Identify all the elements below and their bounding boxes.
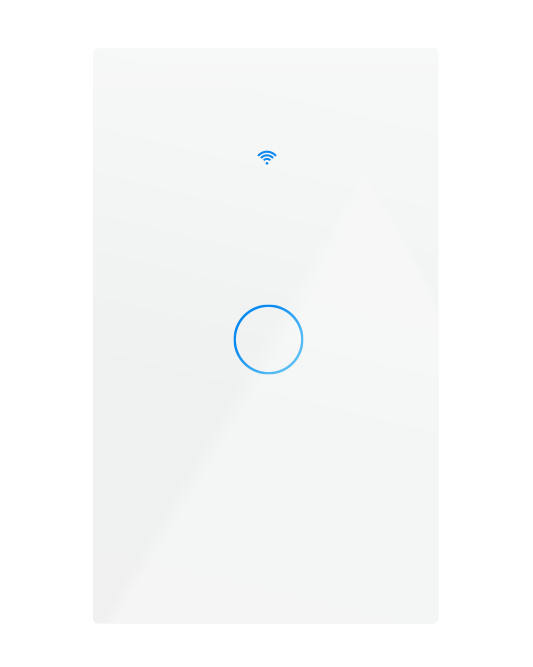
button[interactable]: Power	[230, 301, 307, 378]
